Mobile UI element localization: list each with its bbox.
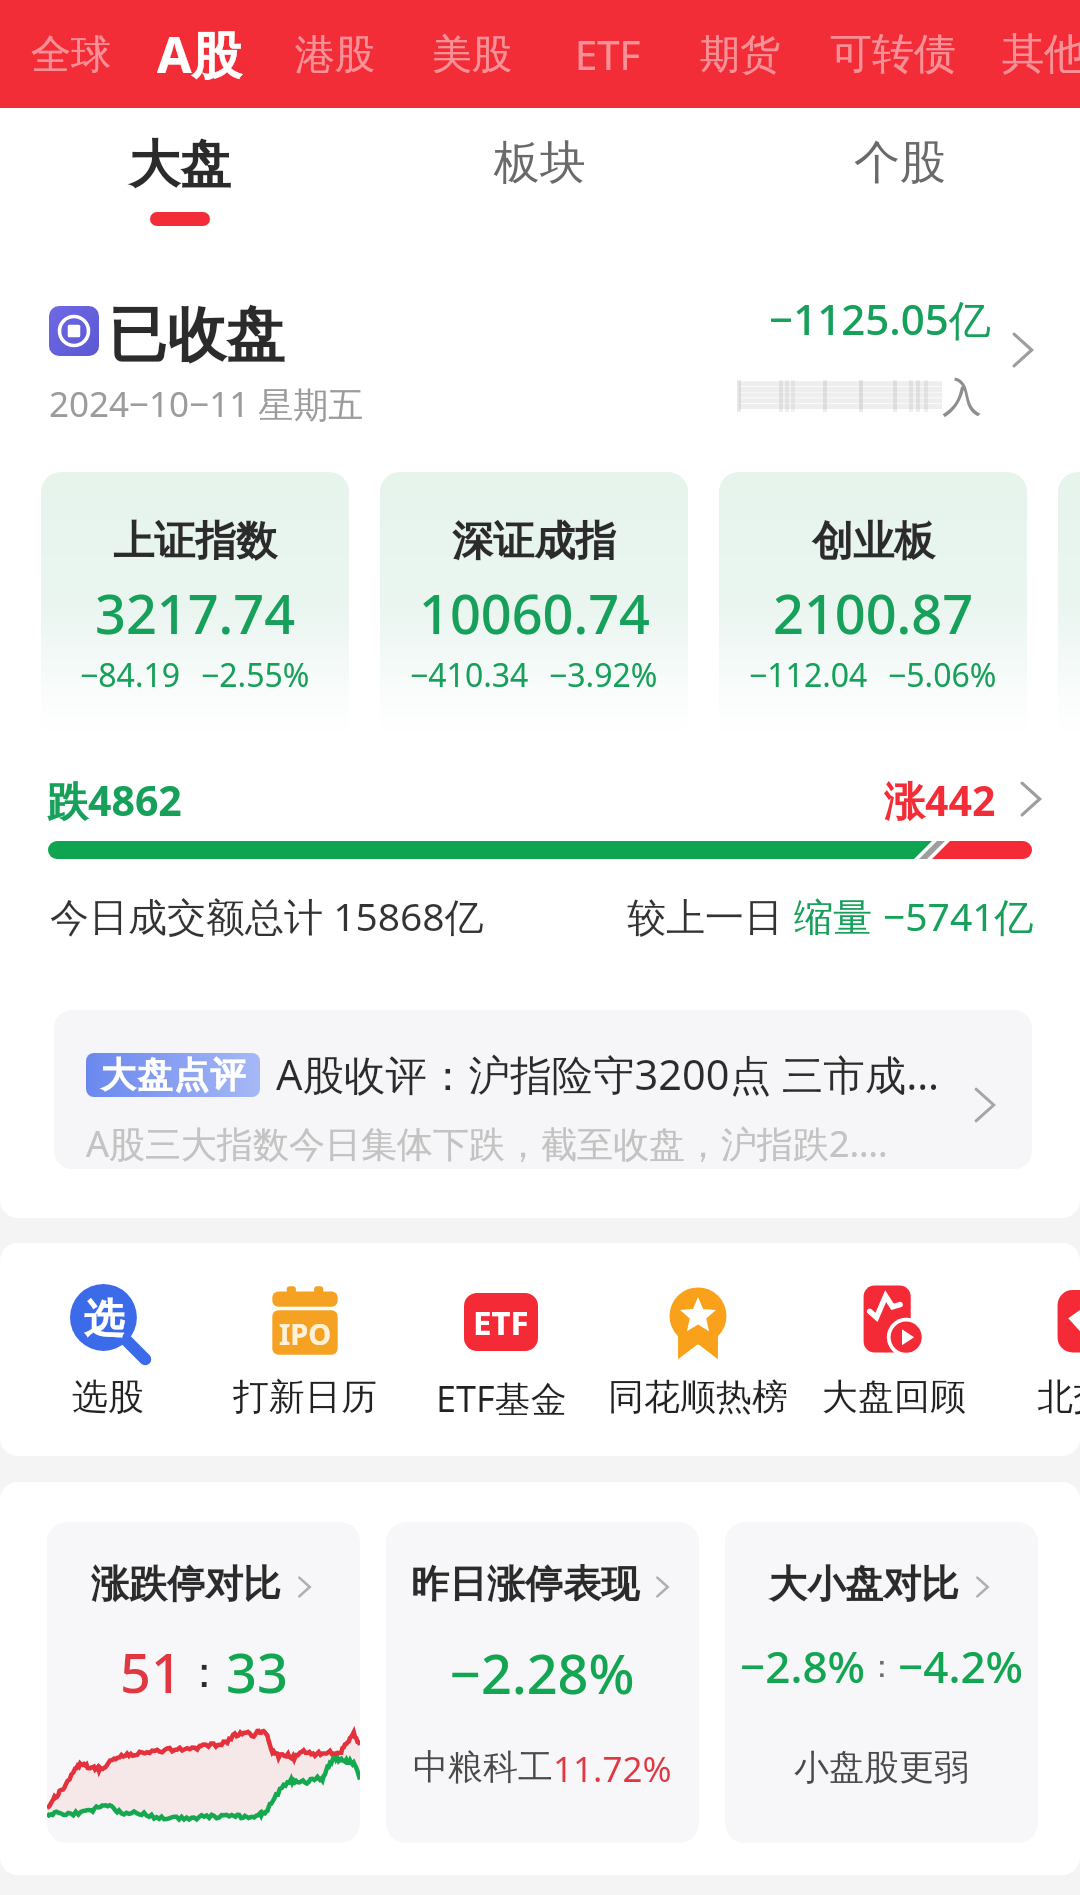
button[interactable]: 科创50 <box>1058 472 1080 740</box>
staticText: ETF基金 <box>436 1374 567 1423</box>
staticText: 今日成交额总计 15868亿 <box>50 889 484 942</box>
staticText: 港股 <box>295 29 375 79</box>
staticText: 2100.87 <box>773 576 974 650</box>
button[interactable]: −1125.05亿 <box>769 290 991 347</box>
button[interactable]: Capital flow detail <box>1000 328 1044 372</box>
staticText: A股 <box>157 20 242 88</box>
staticText: ： <box>182 1645 226 1700</box>
staticText: 大盘点评 <box>100 1053 246 1097</box>
staticText: 其他 <box>1002 28 1080 81</box>
button[interactable]: 涨跌停对比 <box>47 1522 360 1843</box>
staticText: 涨跌停对比 <box>91 1560 281 1608</box>
staticText: 上证指数 <box>113 516 277 568</box>
button[interactable]: Market status <box>49 306 99 356</box>
button[interactable]: 大盘点评 <box>54 1010 1032 1169</box>
staticText: 打新日历 <box>233 1374 377 1419</box>
button[interactable]: 涨442 <box>884 772 996 828</box>
button[interactable]: 个股 <box>720 108 1080 260</box>
staticText: 10060.74 <box>419 576 650 650</box>
staticText: 可转债 <box>830 28 956 81</box>
button[interactable]: 大盘 <box>0 108 360 260</box>
staticText: −410.34 <box>410 653 529 697</box>
button[interactable]: 大小盘对比 <box>725 1522 1038 1843</box>
button[interactable]: 板块 <box>360 108 720 260</box>
staticText: 2024−10−11 星期五 <box>49 380 364 428</box>
staticText: 深证成指 <box>452 516 616 568</box>
staticText: 昨日涨停表现 <box>411 1560 639 1608</box>
button[interactable]: 全球 <box>17 0 125 108</box>
staticText: 入 <box>942 372 982 422</box>
staticText: −4.2% <box>898 1636 1024 1696</box>
staticText: 51 <box>120 1635 182 1709</box>
staticText: A股三大指数今日集体下跌，截至收盘，沪指跌2…. <box>86 1119 888 1168</box>
staticText: IPO <box>279 1314 332 1353</box>
staticText: −1125.05亿 <box>769 290 991 347</box>
staticText: 北交所 <box>1037 1374 1080 1419</box>
button[interactable]: 同花顺热榜 <box>600 1255 796 1445</box>
staticText: 11.72% <box>553 1745 672 1793</box>
staticText: −2.55% <box>201 653 310 697</box>
button[interactable]: Rise fall detail <box>1008 777 1052 821</box>
staticText: 创业板 <box>812 516 935 568</box>
staticText: ETF <box>575 27 641 81</box>
button[interactable]: 大盘回顾 <box>796 1255 992 1445</box>
staticText: 板块 <box>494 134 586 192</box>
staticText: ： <box>866 1646 898 1686</box>
staticText: 期货 <box>700 29 780 79</box>
staticText: 大盘 <box>129 133 231 197</box>
button[interactable]: 港股 <box>281 0 389 108</box>
button[interactable]: 上证指数 <box>41 472 349 740</box>
staticText: 选 <box>84 1293 124 1343</box>
staticText: 33 <box>226 1635 288 1709</box>
staticText: 中粮科工 <box>413 1745 553 1789</box>
staticText: 大盘回顾 <box>822 1374 966 1419</box>
staticText: 3217.74 <box>95 576 296 650</box>
button[interactable]: 期货 <box>686 0 794 108</box>
button[interactable]: 深证成指 <box>380 472 688 740</box>
staticText: ETF <box>473 1300 529 1345</box>
staticText: 涨442 <box>884 772 996 828</box>
staticText: 同花顺热榜 <box>608 1374 788 1419</box>
staticText: −5741亿 <box>883 889 1034 942</box>
button[interactable]: 创业板 <box>719 472 1027 740</box>
staticText: 大小盘对比 <box>769 1560 959 1608</box>
staticText: −5.06% <box>888 653 997 697</box>
staticText: 跌4862 <box>47 772 182 828</box>
staticText: 美股 <box>432 29 512 79</box>
button[interactable]: ETF <box>561 0 655 108</box>
staticText: 小盘股更弱 <box>794 1745 969 1789</box>
button[interactable]: 美股 <box>418 0 526 108</box>
button[interactable]: 选 <box>10 1255 206 1445</box>
button[interactable]: IPO <box>207 1255 403 1445</box>
staticText: 个股 <box>854 134 946 192</box>
button[interactable]: A股 <box>143 0 256 108</box>
staticText: 缩量 <box>794 889 883 942</box>
staticText: 全球 <box>31 29 111 79</box>
staticText: −2.8% <box>740 1636 866 1696</box>
staticText: −112.04 <box>749 653 868 697</box>
staticText: −84.19 <box>80 653 181 697</box>
staticText: 选股 <box>72 1374 144 1419</box>
button[interactable]: 可转债 <box>816 0 970 108</box>
button[interactable]: 其他 <box>988 0 1080 108</box>
button[interactable]: ETF <box>403 1255 599 1445</box>
staticText: A股收评：沪指险守3200点 三市成… <box>276 1046 940 1103</box>
staticText: −3.92% <box>549 653 658 697</box>
staticText: −2.28% <box>450 1636 635 1710</box>
staticText: 已收盘 <box>108 298 285 372</box>
button[interactable]: 跌4862 <box>47 772 182 828</box>
button[interactable]: 昨日涨停表现 <box>386 1522 699 1843</box>
staticText: 较上一日 <box>627 889 794 942</box>
button[interactable]: 北交所 <box>993 1255 1080 1445</box>
